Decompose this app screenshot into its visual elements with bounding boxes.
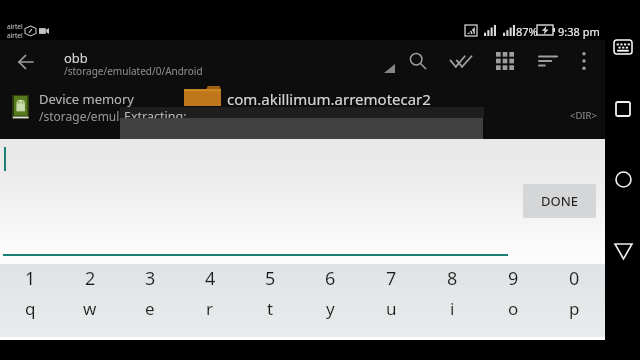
staticText: q xyxy=(25,297,36,320)
staticText: 87% xyxy=(516,24,538,39)
staticText: 8 xyxy=(447,266,458,291)
button[interactable]: 1 xyxy=(0,264,60,292)
staticText: com.akillimum.arremotecar2 xyxy=(227,89,431,109)
button[interactable]: Hide keyboard xyxy=(612,36,634,58)
button[interactable]: r xyxy=(180,294,240,322)
button[interactable]: 4 xyxy=(180,264,240,292)
button[interactable]: Device memory xyxy=(0,90,605,124)
button[interactable]: Back xyxy=(4,40,48,81)
staticText: i xyxy=(450,297,455,320)
button[interactable]: w xyxy=(60,294,120,322)
button[interactable]: o xyxy=(483,294,544,322)
staticText: o xyxy=(508,297,519,320)
button[interactable]: Grid view xyxy=(489,45,521,77)
button[interactable]: Select all xyxy=(445,46,477,78)
staticText: DONE xyxy=(541,192,579,210)
staticText: /storage/emulated/0/Android xyxy=(64,64,203,78)
button[interactable]: Search xyxy=(402,45,434,77)
staticText: Extracting: xyxy=(124,108,187,125)
button[interactable]: p xyxy=(544,294,605,322)
staticText: 4 xyxy=(205,266,216,291)
button[interactable]: 3 xyxy=(120,264,180,292)
staticText: e xyxy=(145,297,155,320)
staticText: 9 xyxy=(508,266,519,291)
button[interactable]: i xyxy=(422,294,483,322)
button[interactable]: More options xyxy=(570,45,598,77)
button[interactable]: 2 xyxy=(60,264,120,292)
button[interactable]: Storage info xyxy=(375,49,403,77)
staticText: airtel xyxy=(7,31,23,40)
staticText: p xyxy=(569,297,580,320)
button[interactable]: Back xyxy=(612,240,634,262)
button[interactable]: Home xyxy=(612,168,634,190)
staticText: 9:38 pm xyxy=(558,24,600,39)
staticText: 0 xyxy=(569,266,580,291)
button[interactable]: 0 xyxy=(544,264,605,292)
button[interactable]: u xyxy=(361,294,422,322)
button[interactable]: 7 xyxy=(361,264,422,292)
staticText: Device memory xyxy=(39,90,134,108)
staticText: <DIR> xyxy=(570,109,597,122)
staticText: 7 xyxy=(386,266,397,291)
button[interactable]: y xyxy=(300,294,361,322)
button[interactable]: 9 xyxy=(483,264,544,292)
staticText: r xyxy=(206,297,214,320)
button[interactable]: Recent apps xyxy=(612,98,634,120)
staticText: 2 xyxy=(85,266,96,291)
button[interactable]: t xyxy=(240,294,300,322)
staticText: w xyxy=(83,297,97,320)
staticText: 5 xyxy=(265,266,276,291)
button[interactable]: Sort xyxy=(532,45,564,77)
staticText: airtel xyxy=(7,22,23,31)
button[interactable]: e xyxy=(120,294,180,322)
staticText: 1 xyxy=(25,266,36,291)
staticText: obb xyxy=(64,49,88,67)
staticText: 3 xyxy=(145,266,156,291)
button[interactable]: 5 xyxy=(240,264,300,292)
staticText: /storage/emulated/0 xyxy=(39,108,156,124)
staticText: 6 xyxy=(325,266,336,291)
button[interactable]: 6 xyxy=(300,264,361,292)
button[interactable]: q xyxy=(0,294,60,322)
staticText: y xyxy=(326,297,335,320)
staticText: u xyxy=(386,297,397,320)
button[interactable]: 8 xyxy=(422,264,483,292)
button[interactable]: com.akillimum.arremotecar2 xyxy=(0,80,605,112)
staticText: t xyxy=(267,297,274,320)
button[interactable]: DONE xyxy=(523,184,596,218)
